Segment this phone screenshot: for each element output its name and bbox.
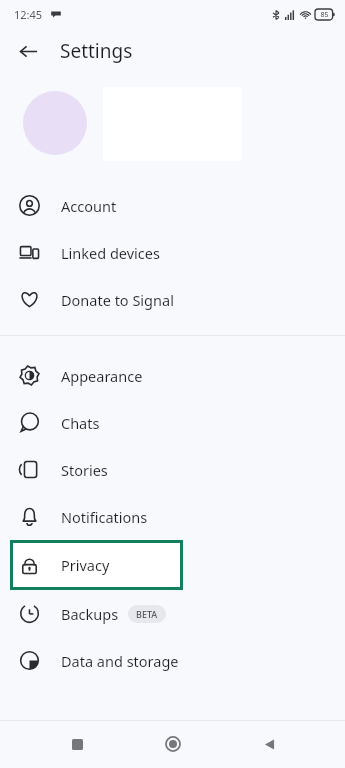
button[interactable]: Account — [0, 182, 345, 229]
staticText: Appearance — [61, 366, 143, 386]
button[interactable]: Home — [153, 724, 193, 764]
staticText: Notifications — [61, 507, 148, 527]
button[interactable]: Stories — [0, 446, 345, 493]
staticText: Donate to Signal — [61, 290, 174, 310]
staticText: Settings — [60, 38, 133, 64]
staticText: Privacy — [61, 555, 110, 575]
staticText: Account — [61, 196, 117, 216]
button[interactable]: Recents — [57, 724, 97, 764]
staticText: Chats — [61, 413, 100, 433]
button[interactable]: Back — [8, 31, 48, 71]
button[interactable]: Notifications — [0, 493, 345, 540]
staticText: Backups — [61, 604, 119, 624]
button[interactable] — [0, 74, 345, 168]
button[interactable]: Donate to Signal — [0, 276, 345, 323]
staticText: Linked devices — [61, 243, 160, 263]
button[interactable]: Backups — [0, 590, 345, 637]
button[interactable]: Appearance — [0, 352, 345, 399]
button[interactable]: Linked devices — [0, 229, 345, 276]
staticText: 12:45 — [14, 7, 43, 22]
button[interactable]: Privacy — [13, 543, 180, 587]
staticText: 85 — [320, 10, 329, 20]
staticText: Data and storage — [61, 651, 179, 671]
button[interactable]: Back — [249, 724, 289, 764]
staticText: Stories — [61, 460, 108, 480]
button[interactable]: Chats — [0, 399, 345, 446]
staticText: BETA — [136, 608, 158, 620]
button[interactable]: Data and storage — [0, 637, 345, 684]
